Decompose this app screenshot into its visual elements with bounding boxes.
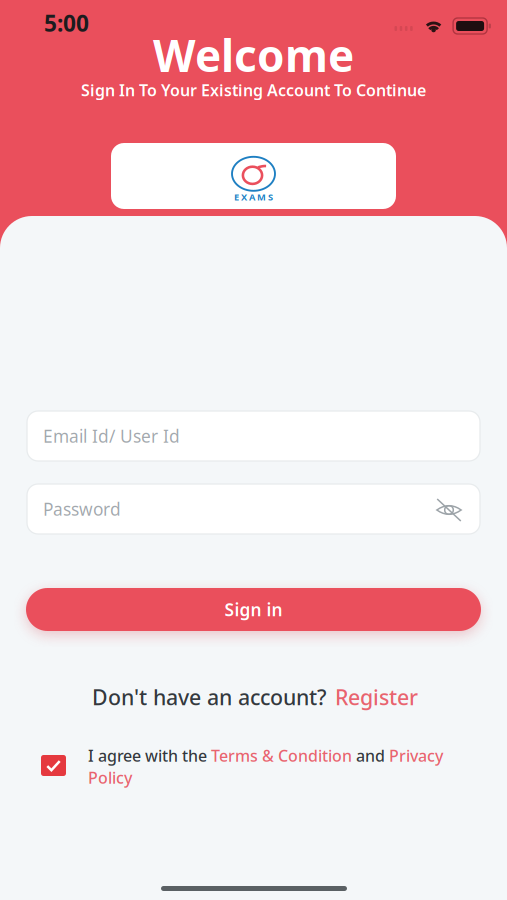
staticText: I agree with the [88, 745, 211, 766]
staticText: Register [335, 683, 418, 711]
button[interactable]: Agree to Terms and Conditions [41, 755, 66, 776]
button[interactable]: Privacy Policy [389, 745, 443, 766]
staticText: Don't have an account? [92, 683, 327, 711]
button[interactable]: Don't have an account? [60, 683, 450, 711]
button[interactable]: Privacy Policy [88, 767, 132, 788]
staticText: Sign in [224, 598, 282, 621]
staticText: Policy [88, 767, 132, 788]
staticText: Welcome [153, 26, 354, 84]
button[interactable]: Email Id/ User Id [27, 411, 480, 461]
staticText: Password [43, 497, 121, 520]
staticText: Sign In To Your Existing Account To Cont… [81, 79, 426, 101]
staticText: Email Id/ User Id [43, 424, 180, 447]
staticText: E X A M S [234, 191, 273, 203]
staticText: and [352, 745, 389, 766]
staticText: 5:00 [44, 8, 89, 38]
button[interactable]: Terms & Condition [211, 745, 352, 766]
staticText: Privacy [389, 745, 443, 766]
staticText: Terms & Condition [211, 745, 352, 766]
button[interactable]: Show password [433, 494, 465, 526]
button[interactable]: Password [27, 484, 480, 534]
button[interactable]: Sign in [26, 588, 481, 631]
